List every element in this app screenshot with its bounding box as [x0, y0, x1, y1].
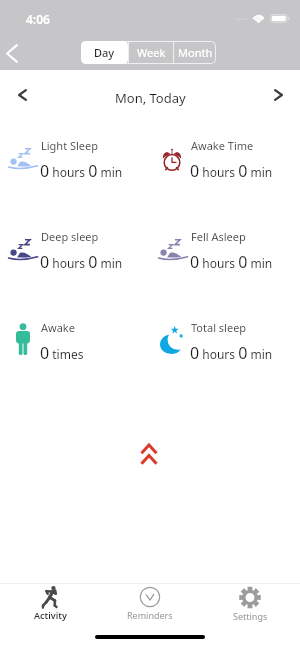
staticText: 0 times	[40, 342, 84, 364]
button[interactable]	[152, 316, 294, 364]
staticText: Mon, Today	[115, 89, 186, 107]
button[interactable]: Next day	[261, 78, 294, 111]
button[interactable]: Reminders	[100, 586, 200, 628]
staticText: 4:06	[26, 11, 50, 27]
button[interactable]: Day	[81, 41, 128, 64]
button[interactable]: Month	[174, 41, 216, 64]
button[interactable]	[0, 225, 142, 273]
staticText: 0 hours 0 min	[40, 251, 123, 273]
button[interactable]: Activity	[0, 586, 100, 628]
staticText: Month	[178, 45, 213, 60]
staticText: 0 hours 0 min	[40, 160, 123, 182]
staticText: Deep sleep	[41, 229, 99, 244]
button[interactable]: Previous day	[6, 78, 39, 111]
staticText: Day	[94, 45, 115, 60]
staticText: Awake Time	[191, 138, 254, 153]
button[interactable]	[0, 134, 142, 182]
button[interactable]	[150, 225, 292, 273]
staticText: Total sleep	[191, 320, 247, 335]
button[interactable]: Settings	[200, 586, 300, 628]
button[interactable]	[153, 134, 295, 182]
staticText: 0 hours 0 min	[190, 160, 273, 182]
button[interactable]: Expand	[127, 433, 171, 477]
button[interactable]: Week	[129, 41, 173, 64]
staticText: Week	[137, 45, 166, 60]
button[interactable]	[8, 316, 150, 364]
staticText: Fell Asleep	[191, 229, 246, 244]
staticText: Settings	[233, 610, 268, 622]
staticText: Reminders	[127, 609, 173, 621]
staticText: Activity	[34, 609, 67, 621]
staticText: 0 hours 0 min	[190, 251, 273, 273]
staticText: Awake	[41, 320, 75, 335]
staticText: Light Sleep	[41, 138, 99, 153]
staticText: 0 hours 0 min	[190, 342, 273, 364]
button[interactable]: Back	[0, 37, 28, 69]
